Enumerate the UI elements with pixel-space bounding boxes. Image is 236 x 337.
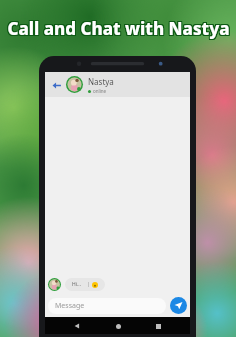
button[interactable]: Back [49,78,63,92]
staticText: Call and Chat with Nastya [6,17,229,40]
staticText: Call and Chat with Nastya [7,17,230,40]
staticText: Call and Chat with Nastya [6,18,229,41]
staticText: online [93,88,107,94]
staticText: Call and Chat with Nastya [8,18,231,41]
staticText: Call and Chat with Nastya [6,16,229,39]
staticText: Call and Chat with Nastya [8,16,231,39]
staticText: Call and Chat with Nastya [6,17,229,40]
button[interactable]: Back [69,318,85,334]
staticText: Call and Chat with Nastya [6,18,229,41]
staticText: Call and Chat with Nastya [7,18,230,41]
staticText: Call and Chat with Nastya [8,16,231,39]
button[interactable]: Send [170,297,187,314]
staticText: Call and Chat with Nastya [8,17,231,40]
button[interactable]: Recents [150,318,166,334]
staticText: Call and Chat with Nastya [6,16,229,39]
staticText: Call and Chat with Nastya [8,18,231,41]
staticText: Call and Chat with Nastya [7,18,230,41]
staticText: Hi... [72,281,82,288]
staticText: | [87,281,90,288]
button[interactable]: Hi... [65,278,105,291]
staticText: Call and Chat with Nastya [7,16,230,39]
staticText: Nastya [88,76,114,87]
staticText: Call and Chat with Nastya [8,18,231,41]
staticText: Call and Chat with Nastya [6,18,229,41]
button[interactable]: Message [48,298,166,314]
staticText: Call and Chat with Nastya [6,16,229,39]
staticText: Message [55,301,85,311]
staticText: Call and Chat with Nastya [8,17,231,40]
staticText: Call and Chat with Nastya [8,16,231,39]
button[interactable]: Home [110,318,126,334]
button[interactable]: Nastya [88,76,186,94]
staticText: Call and Chat with Nastya [7,16,230,39]
